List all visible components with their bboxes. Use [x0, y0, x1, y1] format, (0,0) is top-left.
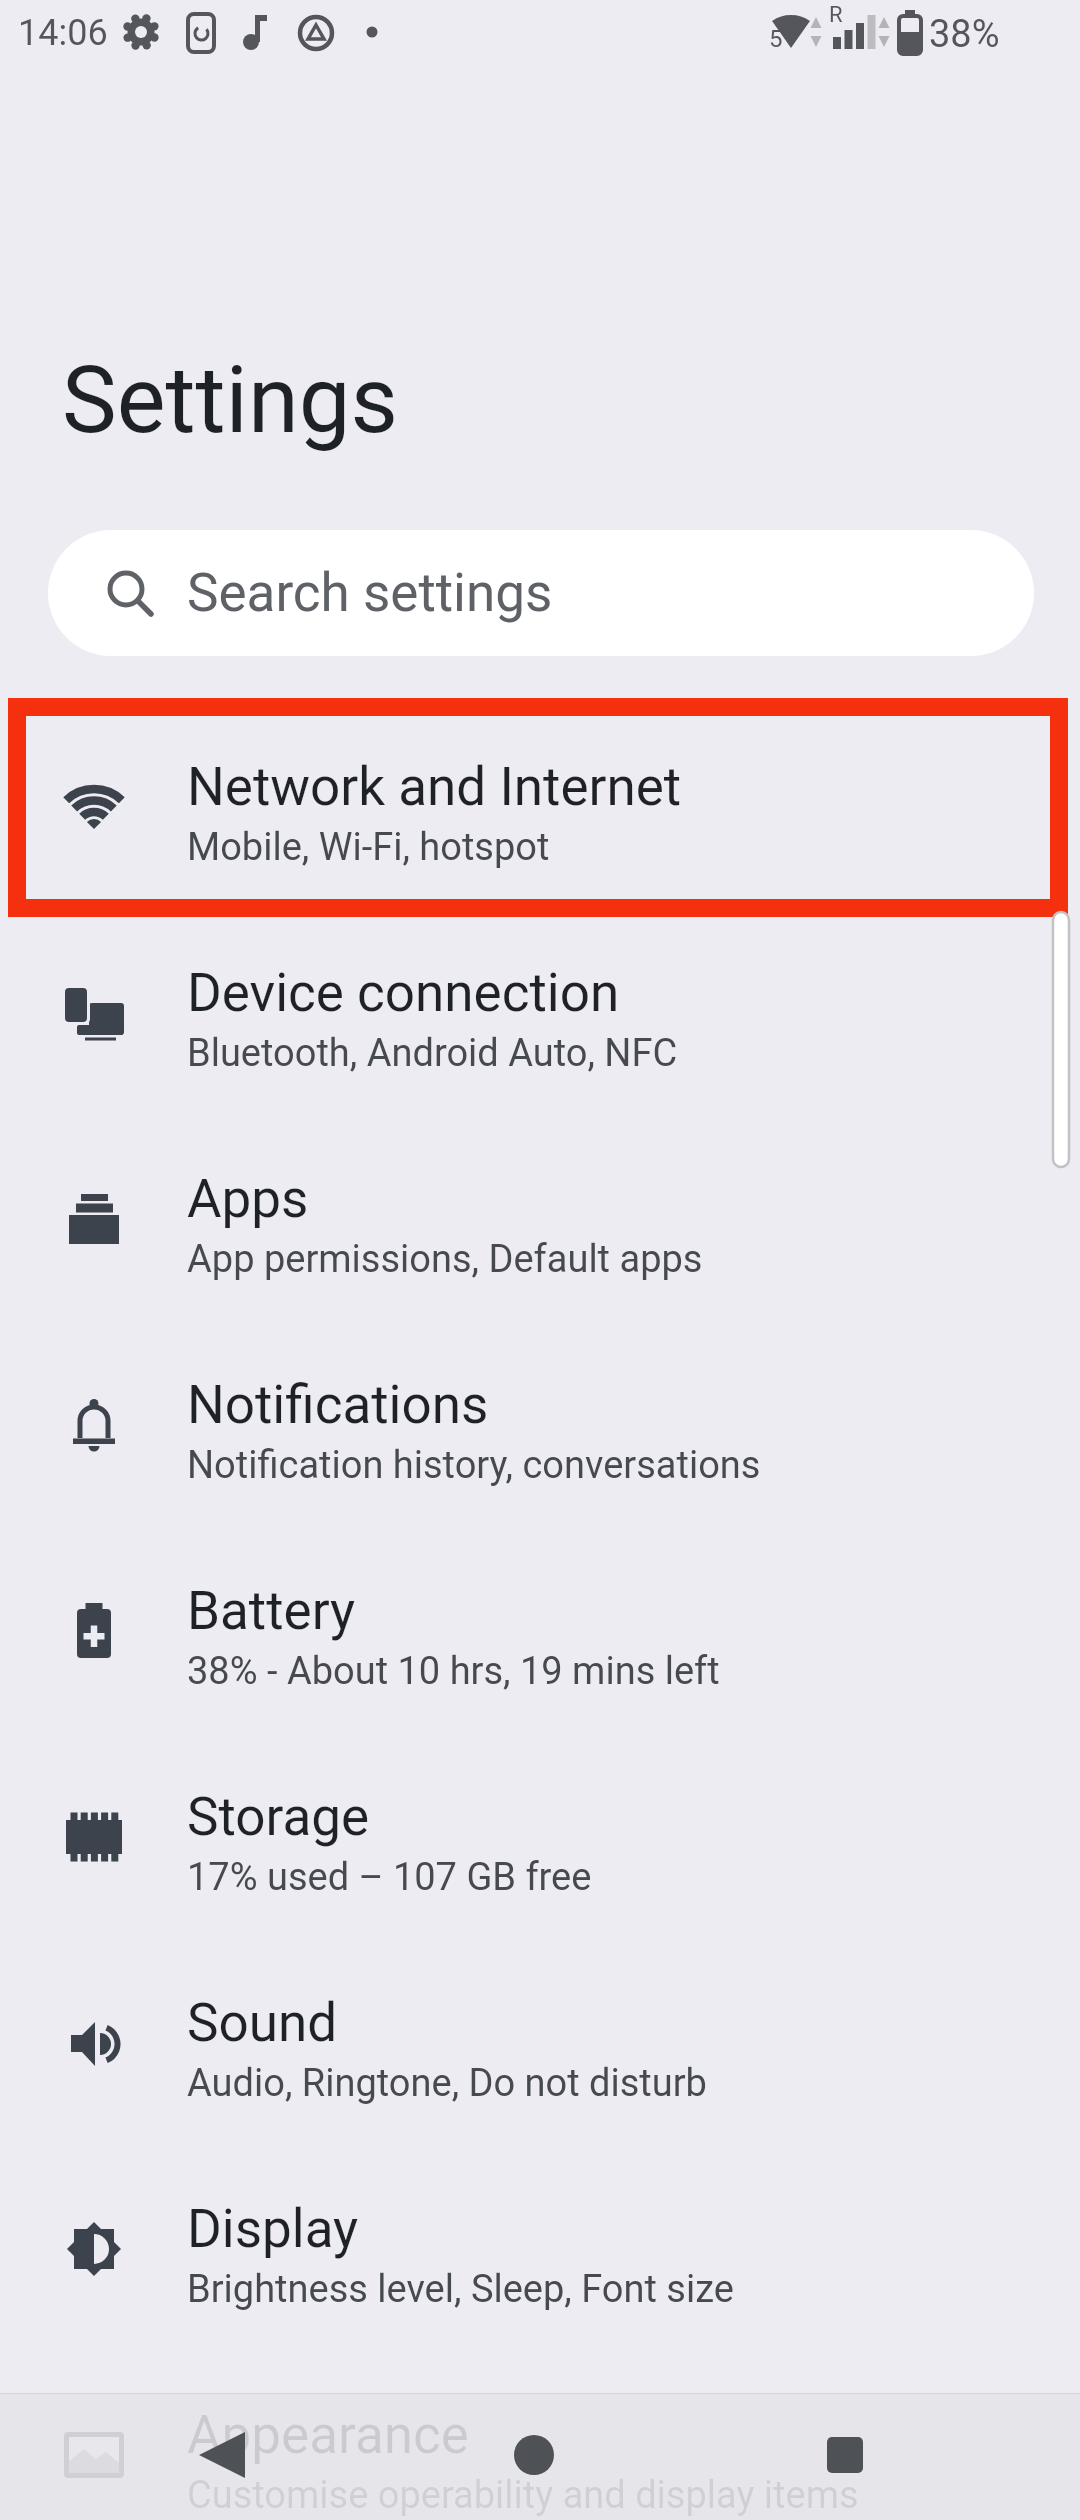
staticText: Customise operability and display items: [187, 2473, 859, 2518]
staticText: Search settings: [187, 562, 553, 624]
button[interactable]: [150, 2393, 295, 2518]
staticText: Apps: [187, 1168, 309, 1230]
staticText: Settings: [62, 347, 398, 455]
staticText: Sound: [187, 1992, 338, 2054]
button[interactable]: Battery: [0, 1528, 1080, 1734]
button[interactable]: [772, 2393, 917, 2518]
staticText: Bluetooth, Android Auto, NFC: [187, 1031, 678, 1076]
button[interactable]: Display: [0, 2146, 1080, 2352]
button[interactable]: [462, 2393, 607, 2518]
button[interactable]: Network and Internet: [0, 704, 1080, 910]
staticText: App permissions, Default apps: [187, 1237, 703, 1282]
staticText: 38%: [929, 12, 1000, 57]
button[interactable]: Apps: [0, 1116, 1080, 1322]
staticText: Network and Internet: [187, 756, 682, 818]
button[interactable]: Notifications: [0, 1322, 1080, 1528]
staticText: Audio, Ringtone, Do not disturb: [187, 2061, 707, 2106]
staticText: 14:06: [18, 12, 108, 54]
staticText: Display: [187, 2198, 359, 2260]
staticText: Notification history, conversations: [187, 1443, 761, 1488]
staticText: Appearance: [187, 2404, 469, 2466]
staticText: Storage: [187, 1786, 370, 1848]
button[interactable]: Device connection: [0, 910, 1080, 1116]
staticText: 17% used – 107 GB free: [187, 1855, 592, 1900]
staticText: 5: [769, 25, 783, 53]
button[interactable]: Search settings: [48, 530, 1034, 656]
button[interactable]: Sound: [0, 1940, 1080, 2146]
staticText: Brightness level, Sleep, Font size: [187, 2267, 734, 2312]
staticText: Notifications: [187, 1374, 489, 1436]
staticText: Device connection: [187, 962, 620, 1024]
staticText: 38% - About 10 hrs, 19 mins left: [187, 1649, 720, 1694]
button[interactable]: Appearance: [0, 2352, 1080, 2520]
button[interactable]: Storage: [0, 1734, 1080, 1940]
staticText: Battery: [187, 1580, 356, 1642]
staticText: R: [829, 2, 843, 28]
staticText: Mobile, Wi-Fi, hotspot: [187, 825, 550, 870]
